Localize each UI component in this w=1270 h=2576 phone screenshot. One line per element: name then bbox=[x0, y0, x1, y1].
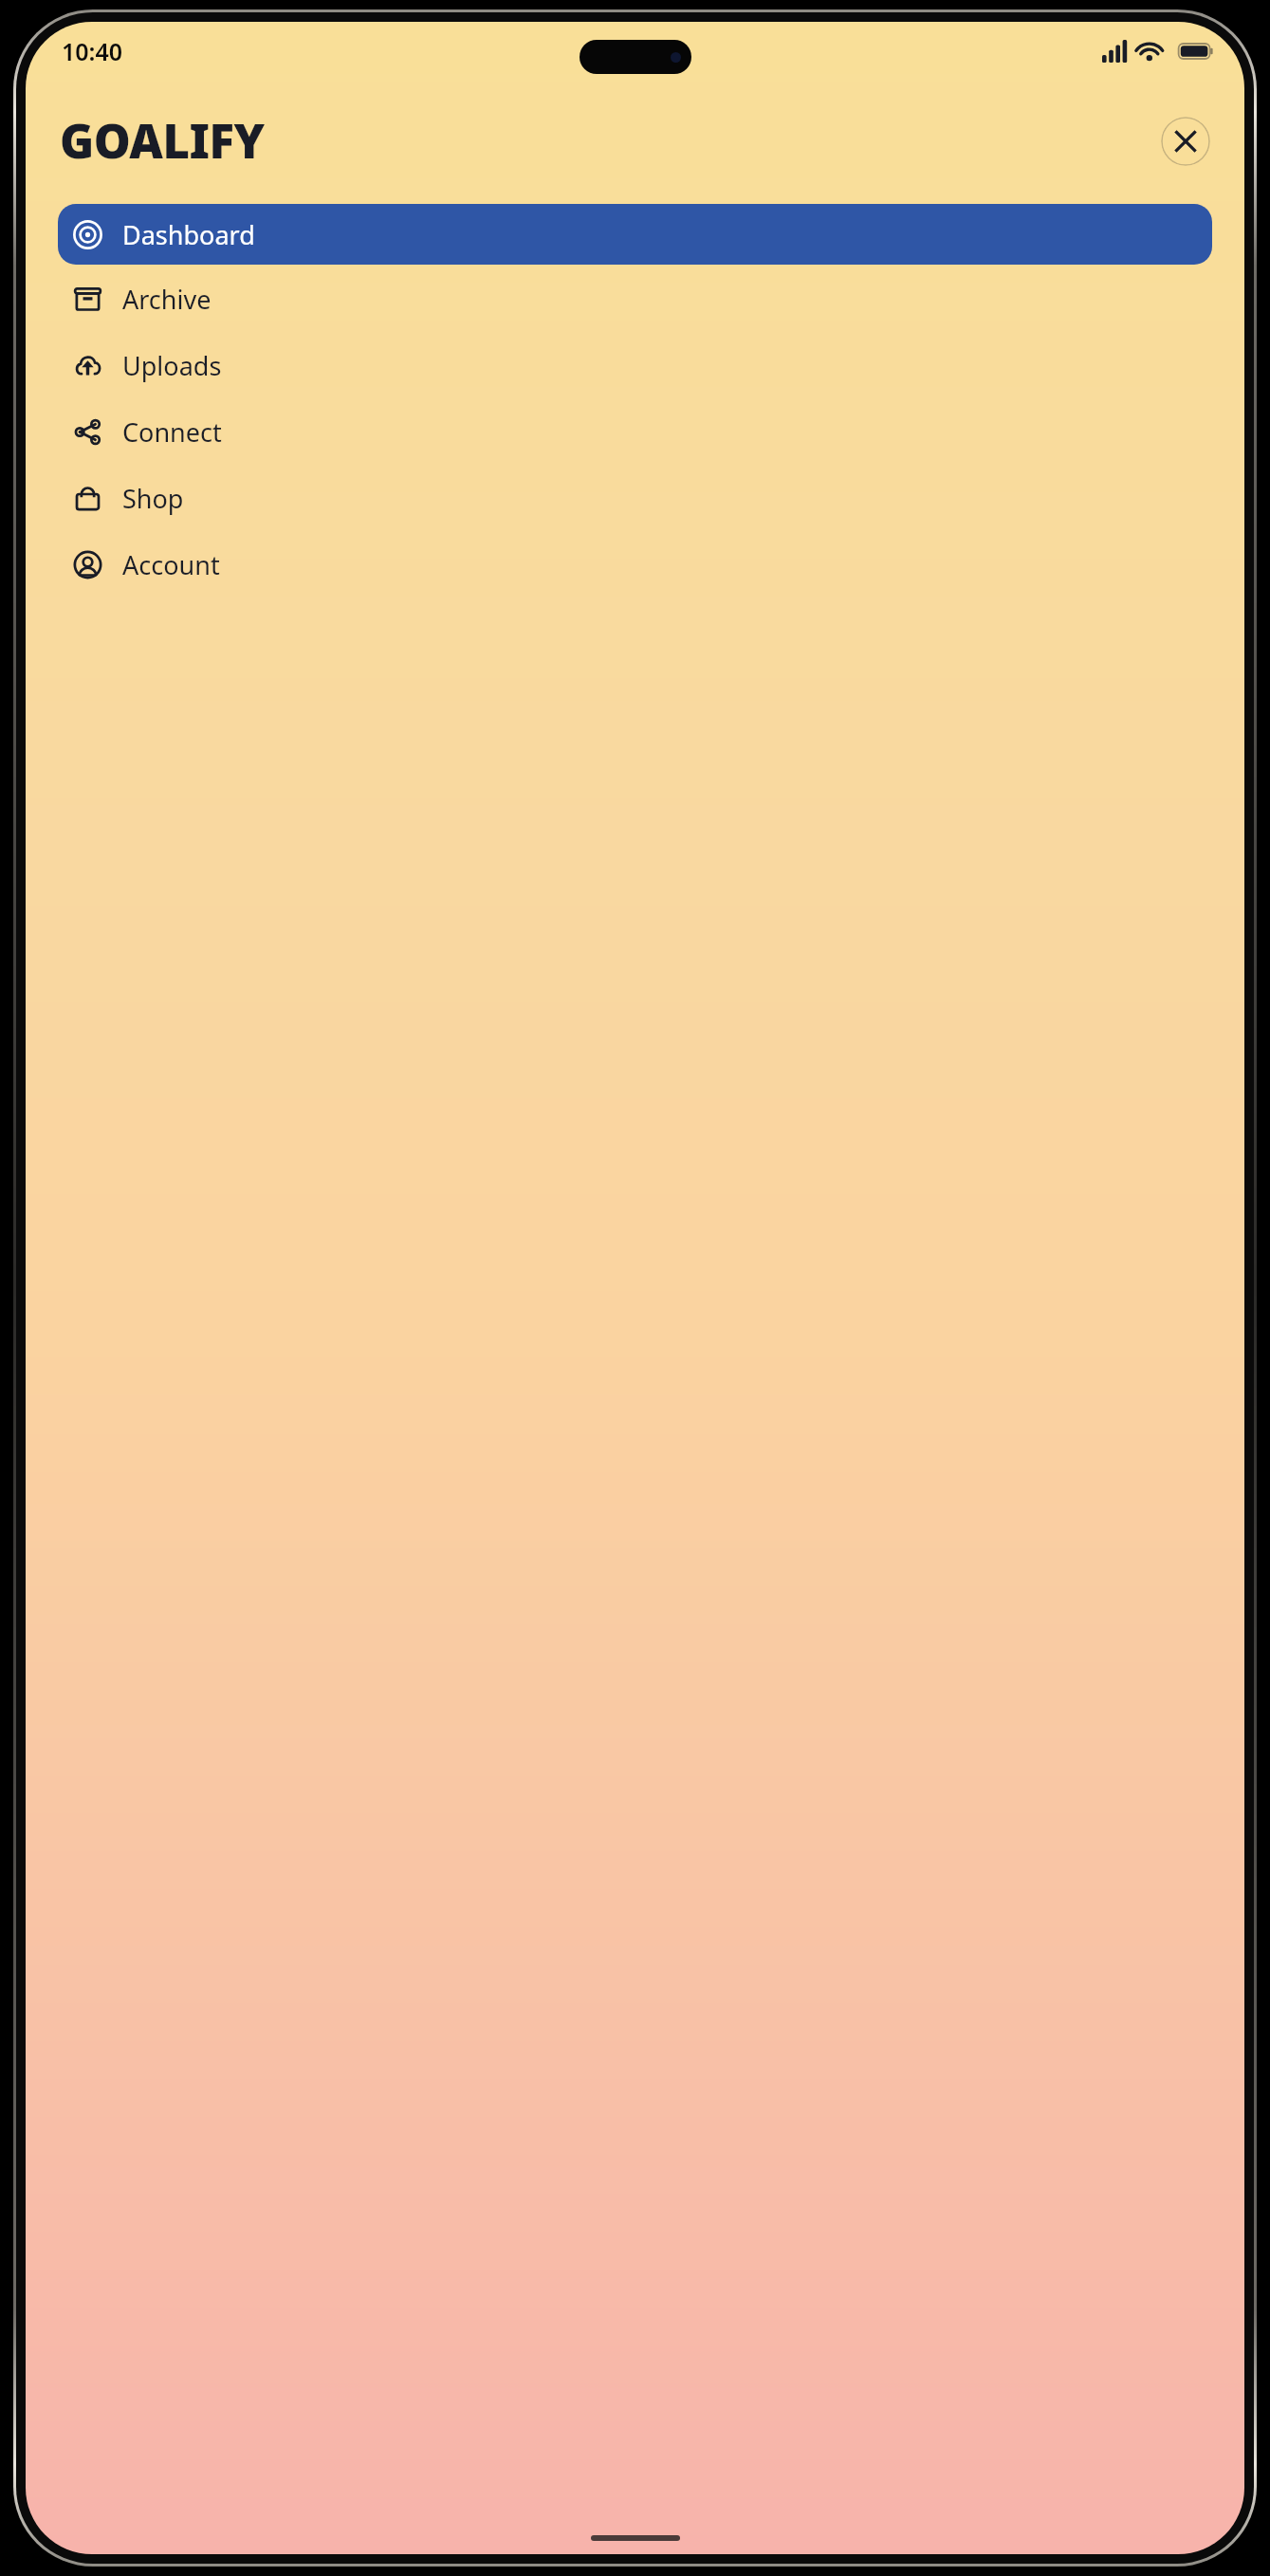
button[interactable]: Uploads bbox=[58, 337, 1212, 394]
staticText: Shop bbox=[122, 481, 184, 516]
button[interactable]: Shop bbox=[58, 469, 1212, 526]
staticText: Account bbox=[122, 547, 220, 582]
button[interactable]: Connect bbox=[58, 403, 1212, 460]
staticText: Dashboard bbox=[122, 217, 255, 252]
staticText: 10:40 bbox=[62, 35, 123, 67]
staticText: GOALIFY bbox=[60, 109, 265, 173]
staticText: Archive bbox=[122, 282, 212, 317]
staticText: Uploads bbox=[122, 348, 222, 383]
button[interactable]: Dashboard bbox=[58, 204, 1212, 265]
button[interactable]: Close bbox=[1161, 117, 1210, 166]
button[interactable]: Account bbox=[58, 536, 1212, 593]
staticText: Connect bbox=[122, 414, 222, 450]
button[interactable]: Archive bbox=[58, 270, 1212, 327]
